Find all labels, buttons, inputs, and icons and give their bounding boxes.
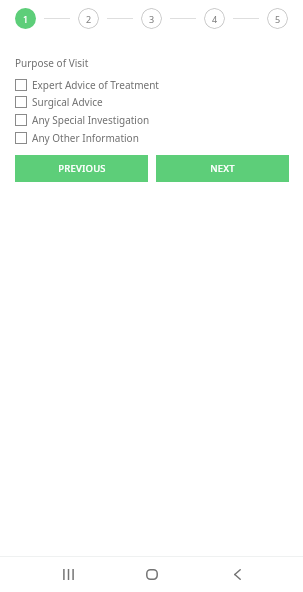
- button[interactable]: 4: [204, 8, 225, 29]
- button[interactable]: Surgical Advice: [0, 93, 303, 111]
- staticText: 5: [275, 13, 281, 25]
- staticText: Any Special Investigation: [32, 113, 150, 127]
- button[interactable]: Any Other Information: [0, 129, 303, 147]
- staticText: Any Other Information: [32, 131, 139, 145]
- button[interactable]: 3: [141, 8, 162, 29]
- staticText: 2: [86, 13, 92, 25]
- button[interactable]: Recent apps: [48, 557, 88, 592]
- staticText: Purpose of Visit: [15, 56, 89, 70]
- staticText: Expert Advice of Treatment: [32, 78, 159, 92]
- button[interactable]: 2: [78, 8, 99, 29]
- button[interactable]: NEXT: [156, 155, 289, 182]
- button[interactable]: PREVIOUS: [15, 155, 148, 182]
- staticText: PREVIOUS: [58, 162, 106, 175]
- button[interactable]: 1: [15, 8, 36, 29]
- staticText: NEXT: [210, 162, 235, 175]
- staticText: 3: [149, 13, 155, 25]
- button[interactable]: Any Special Investigation: [0, 111, 303, 129]
- button[interactable]: Expert Advice of Treatment: [0, 76, 303, 94]
- staticText: 4: [212, 13, 218, 25]
- staticText: 1: [23, 13, 29, 25]
- staticText: Surgical Advice: [32, 95, 103, 109]
- button[interactable]: Home: [132, 557, 172, 592]
- button[interactable]: 5: [267, 8, 288, 29]
- button[interactable]: Back: [217, 557, 257, 592]
